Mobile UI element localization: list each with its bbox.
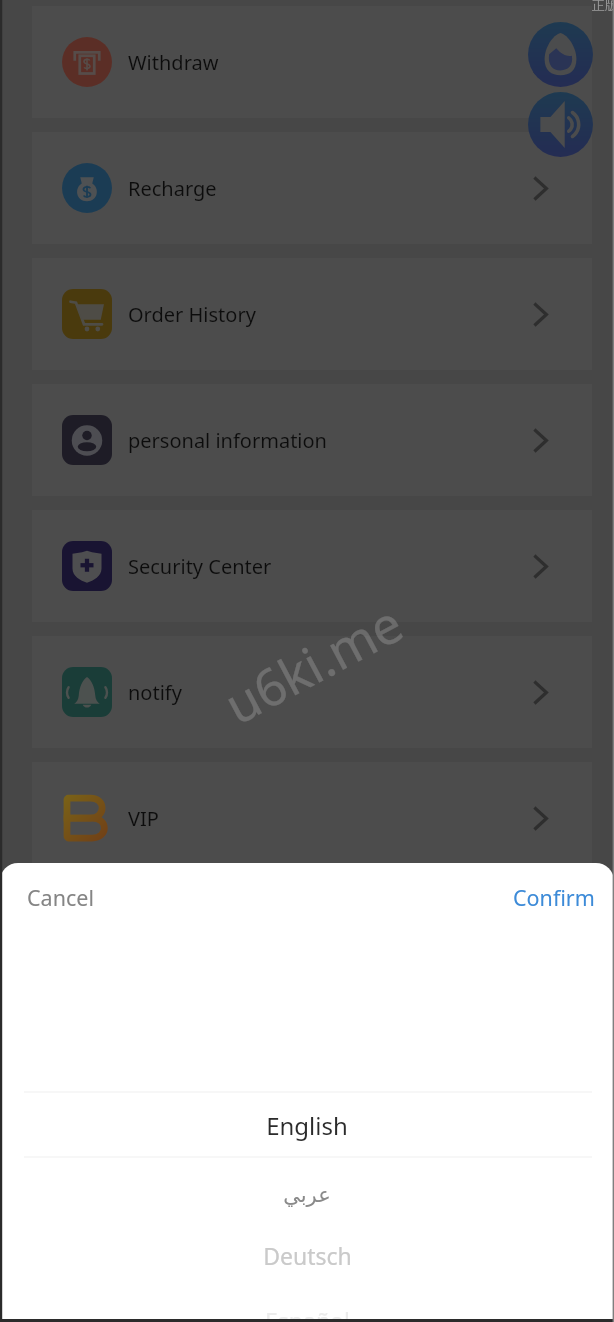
- staticText: Cancel: [27, 883, 94, 912]
- staticText: Order History: [128, 301, 256, 328]
- staticText: u6ki.me: [212, 587, 414, 738]
- button[interactable]: personal information: [32, 384, 592, 496]
- button[interactable]: Security Center: [32, 510, 592, 622]
- staticText: عربي: [283, 1183, 331, 1207]
- button[interactable]: Cancel: [0, 873, 110, 922]
- button[interactable]: Confirm: [497, 873, 614, 922]
- staticText: Español: [265, 1305, 350, 1322]
- button[interactable]: VIP: [32, 762, 592, 874]
- button[interactable]: Recharge: [32, 132, 592, 244]
- staticText: Security Center: [128, 553, 272, 580]
- button[interactable]: notify: [32, 636, 592, 748]
- staticText: Deutsch: [263, 1240, 352, 1271]
- button[interactable]: Withdraw: [32, 6, 592, 118]
- button[interactable]: Español: [0, 1288, 614, 1322]
- staticText: Withdraw: [128, 49, 219, 76]
- staticText: Recharge: [128, 175, 217, 202]
- staticText: notify: [128, 679, 182, 706]
- button[interactable]: Deutsch: [0, 1223, 614, 1287]
- staticText: English: [266, 1109, 348, 1142]
- button[interactable]: عربي: [0, 1163, 614, 1227]
- button[interactable]: Sound: [528, 92, 593, 157]
- button[interactable]: Order History: [32, 258, 592, 370]
- staticText: 正版: [592, 0, 614, 13]
- staticText: personal information: [128, 427, 327, 454]
- button[interactable]: Customer service: [528, 22, 593, 87]
- button[interactable]: English: [0, 1093, 614, 1157]
- staticText: VIP: [128, 805, 159, 832]
- staticText: Confirm: [513, 883, 595, 912]
